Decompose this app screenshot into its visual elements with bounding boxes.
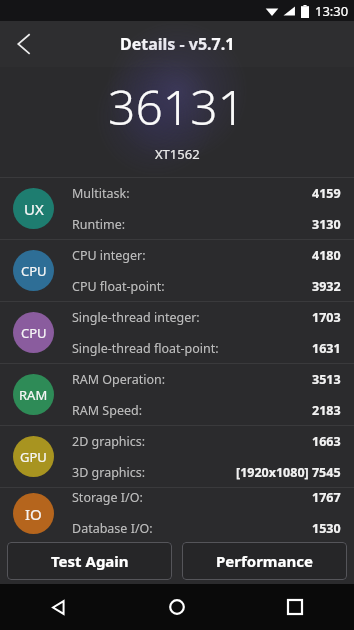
staticText: 3513 <box>312 371 341 388</box>
staticText: RAM <box>19 386 48 404</box>
staticText: UX <box>24 199 44 219</box>
staticText: 3130 <box>312 216 341 233</box>
staticText: 4159 <box>312 185 341 202</box>
button[interactable]: Home <box>118 584 236 630</box>
staticText: 1703 <box>312 309 341 326</box>
staticText: [1920x1080] 7545 <box>236 464 341 481</box>
staticText: XT1562 <box>155 145 200 163</box>
staticText: 2183 <box>312 402 341 419</box>
button[interactable]: Test Again <box>7 542 172 580</box>
staticText: Single-thread integer: <box>72 309 200 326</box>
staticText: 13:30 <box>315 2 349 20</box>
button[interactable]: Back <box>0 21 48 67</box>
staticText: 4180 <box>312 247 341 264</box>
button[interactable]: IO <box>0 488 354 538</box>
staticText: Performance <box>216 551 313 571</box>
staticText: Single-thread float-point: <box>72 340 219 357</box>
staticText: 2D graphics: <box>72 433 146 450</box>
staticText: CPU <box>21 324 47 342</box>
staticText: 1767 <box>312 489 341 506</box>
staticText: Database I/O: <box>72 520 153 537</box>
button[interactable]: GPU <box>0 426 354 487</box>
staticText: CPU integer: <box>72 247 146 264</box>
staticText: Storage I/O: <box>72 489 143 506</box>
staticText: Multitask: <box>72 185 130 202</box>
staticText: RAM Operation: <box>72 371 166 388</box>
staticText: GPU <box>20 448 47 466</box>
staticText: CPU float-point: <box>72 278 165 295</box>
staticText: 3D graphics: <box>72 464 146 481</box>
staticText: 1663 <box>312 433 341 450</box>
button[interactable]: RAM <box>0 364 354 425</box>
staticText: IO <box>25 504 42 524</box>
button[interactable]: UX <box>0 178 354 239</box>
staticText: 3932 <box>312 278 341 295</box>
button[interactable]: Performance <box>182 542 347 580</box>
staticText: 36131 <box>108 74 246 139</box>
button[interactable]: Recent apps <box>236 584 354 630</box>
button[interactable]: CPU <box>0 240 354 301</box>
staticText: Test Again <box>51 551 129 571</box>
staticText: CPU <box>21 262 47 280</box>
button[interactable]: CPU <box>0 302 354 363</box>
staticText: 1530 <box>312 520 341 537</box>
staticText: RAM Speed: <box>72 402 143 419</box>
staticText: Details - v5.7.1 <box>120 33 235 55</box>
staticText: Runtime: <box>72 216 126 233</box>
staticText: 1631 <box>312 340 341 357</box>
button[interactable]: Back <box>0 584 118 630</box>
